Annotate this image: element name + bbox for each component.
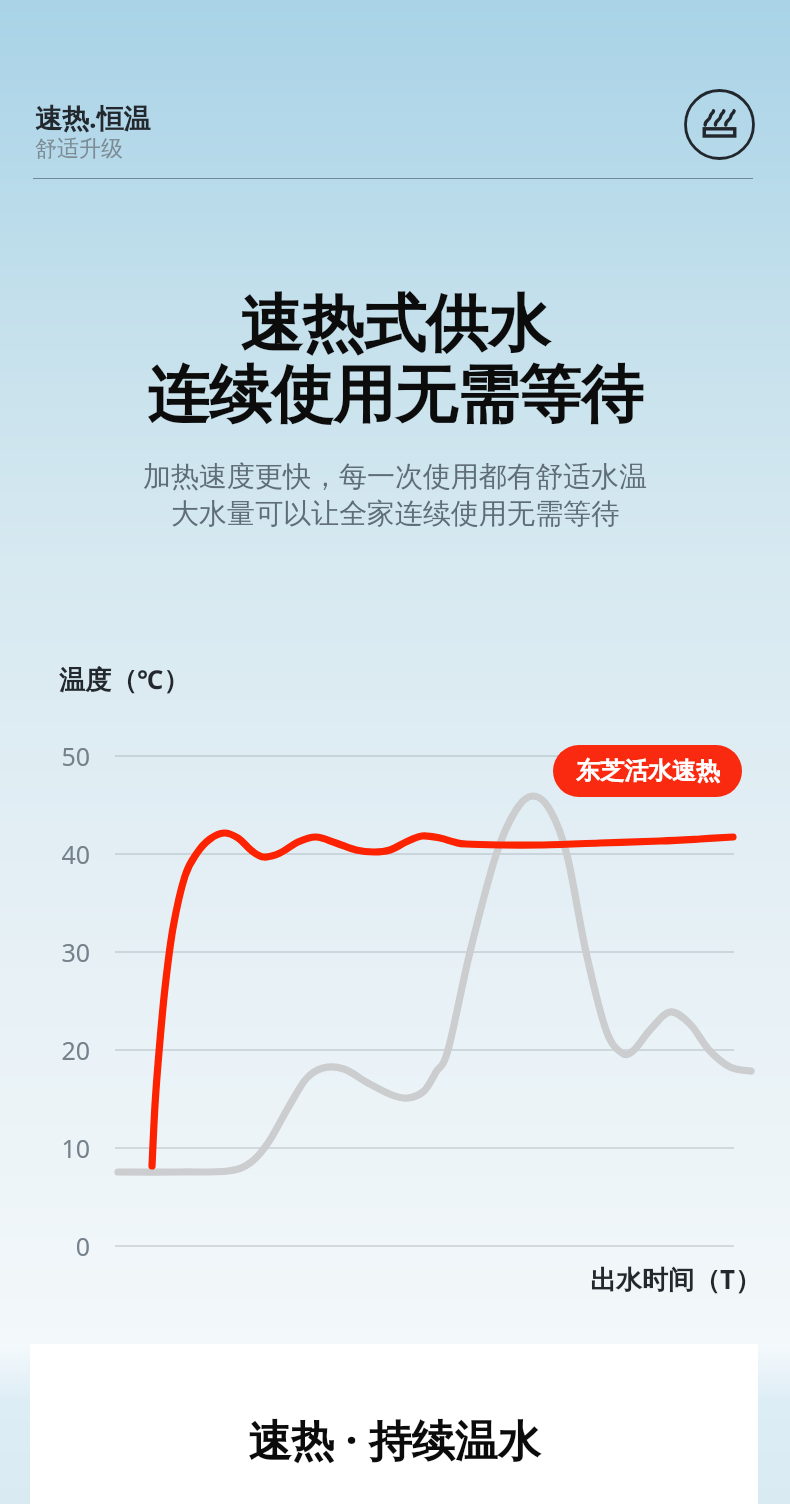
button[interactable]: 东芝活水速热 (553, 745, 742, 797)
staticText: 速热 · 持续温水 (248, 1410, 541, 1469)
staticText: 50 (30, 739, 90, 773)
staticText: 0 (30, 1229, 90, 1263)
staticText: 舒适升级 (35, 135, 123, 163)
staticText: 30 (30, 935, 90, 969)
staticText: 20 (30, 1033, 90, 1067)
staticText: 连续使用无需等待 (0, 356, 790, 434)
staticText: 温度（℃） (59, 661, 190, 697)
staticText: 速热.恒温 (35, 99, 151, 136)
staticText: 出水时间（T） (590, 1261, 762, 1297)
staticText: 速热式供水 (0, 285, 790, 363)
staticText: 40 (30, 837, 90, 871)
staticText: 东芝活水速热 (576, 756, 720, 786)
button[interactable]: Heating (684, 89, 755, 160)
staticText: 10 (30, 1131, 90, 1165)
staticText: 加热速度更快，每一次使用都有舒适水温 大水量可以让全家连续使用无需等待 (0, 459, 790, 531)
